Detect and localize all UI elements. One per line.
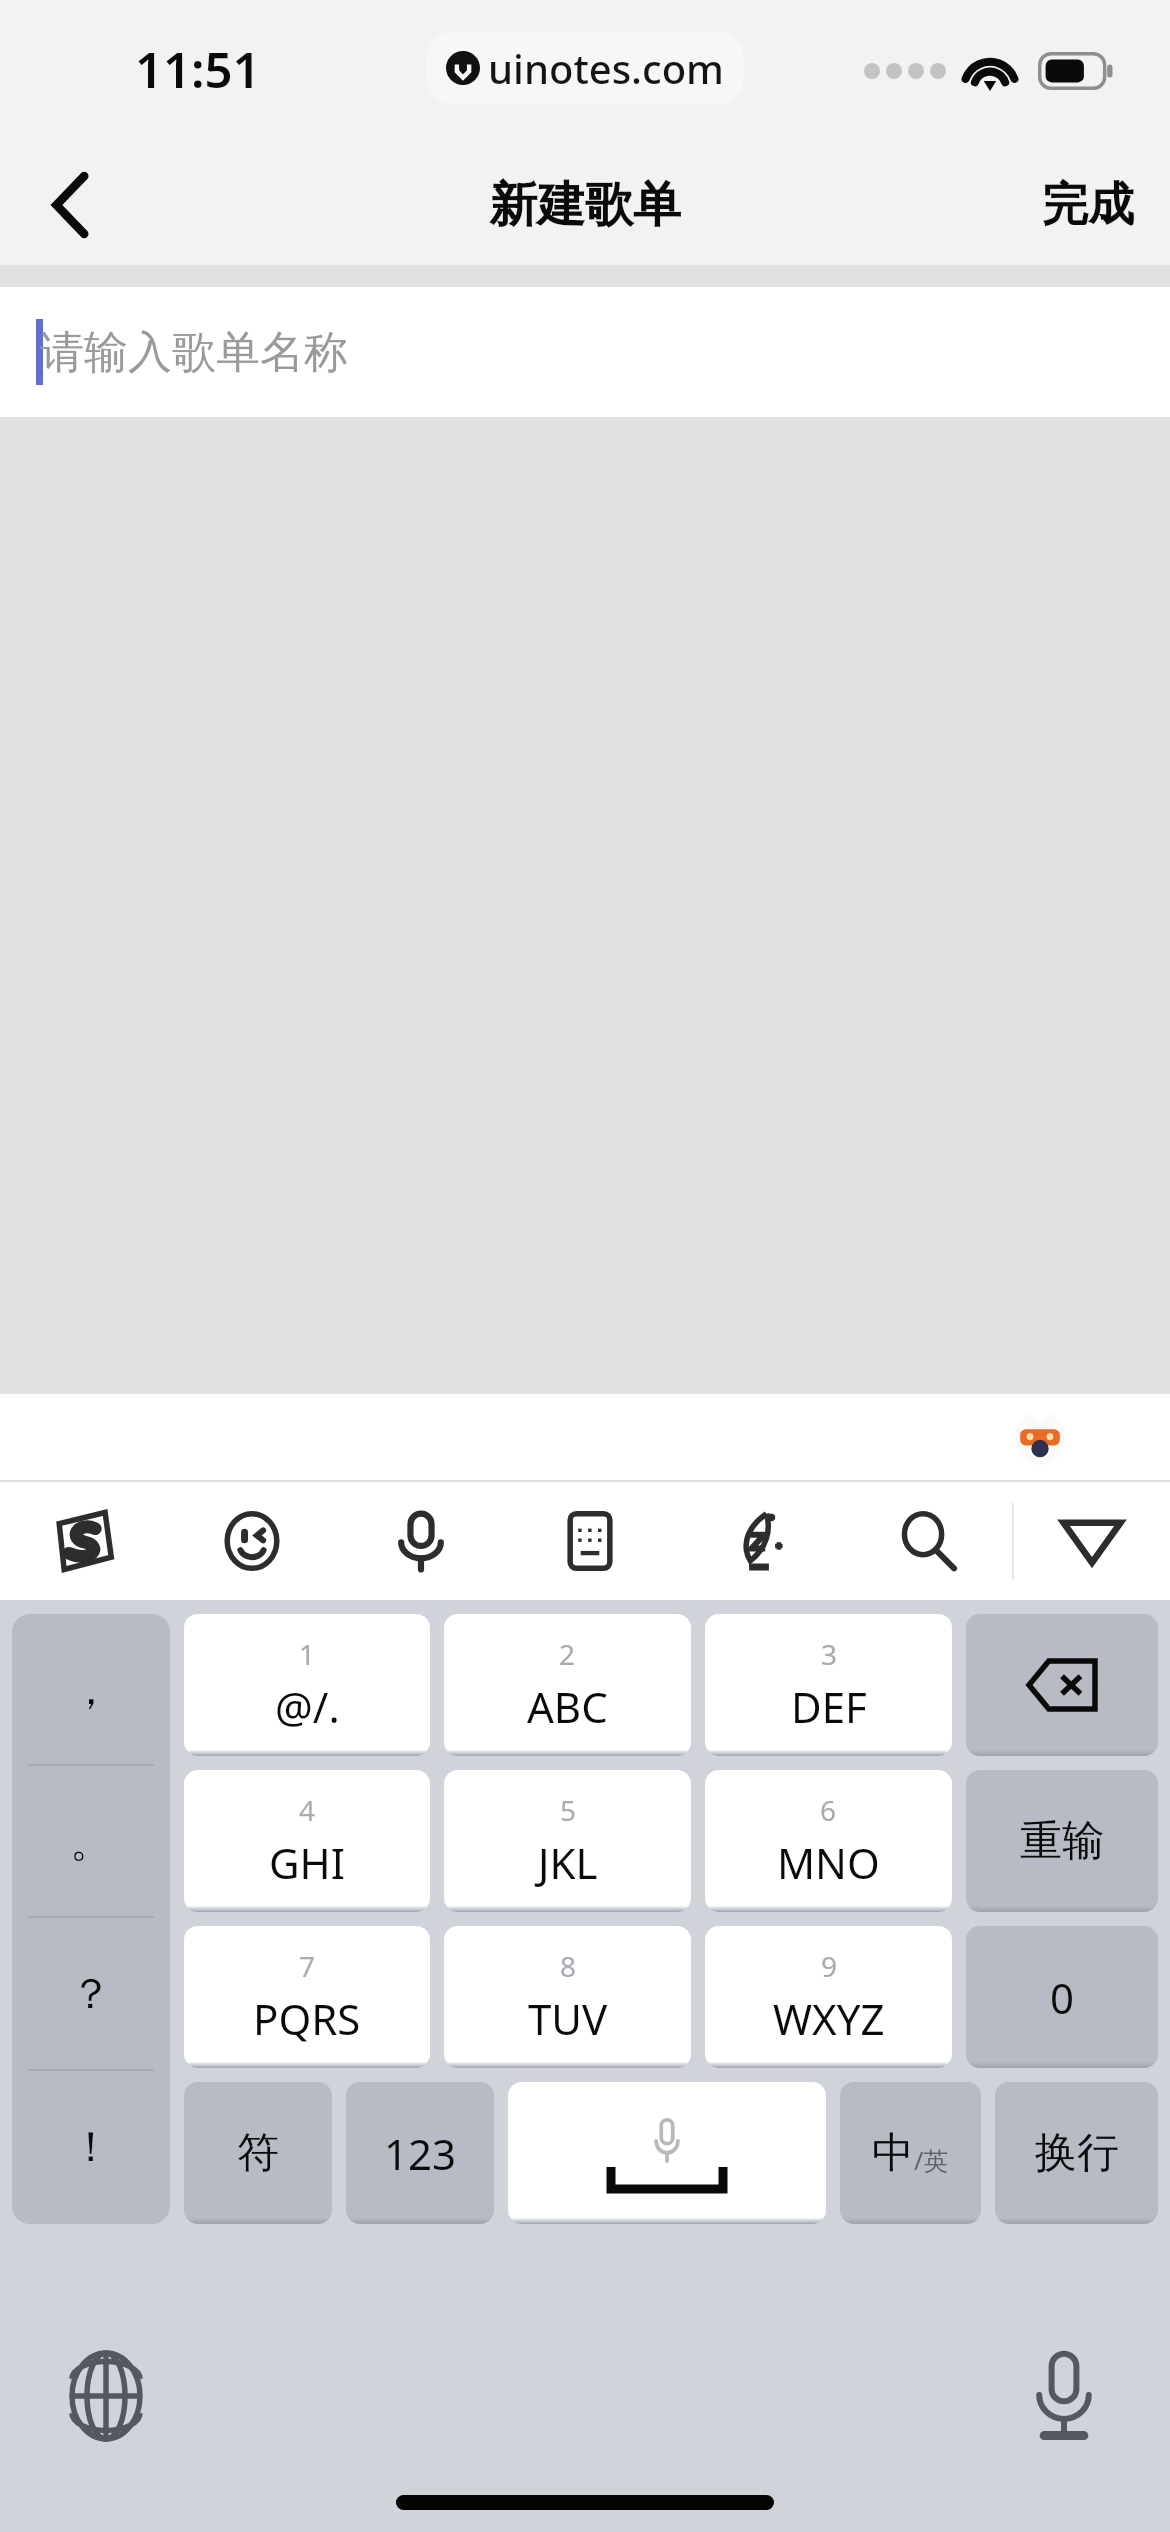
staticText: TUV [528, 1990, 608, 2047]
staticText: PQRS [253, 1990, 361, 2047]
button[interactable]: 请输入歌单名称 [0, 287, 1170, 417]
button[interactable]: Search [843, 1482, 1012, 1600]
button[interactable]: 4 [184, 1770, 430, 1912]
button[interactable]: 8 [444, 1926, 691, 2068]
button[interactable]: ！ [12, 2071, 170, 2224]
button[interactable]: 重输 [966, 1770, 1158, 1912]
staticText: 新建歌单 [489, 175, 681, 235]
button[interactable]: Voice input [336, 1482, 505, 1600]
button[interactable]: Voice input [1018, 2350, 1110, 2442]
staticText: 0 [1050, 1969, 1075, 2026]
button[interactable]: 1 [184, 1614, 430, 1756]
button[interactable]: 0 [966, 1926, 1158, 2068]
staticText: 123 [384, 2125, 457, 2182]
staticText: 11:51 [135, 36, 261, 103]
button[interactable]: Sogou [0, 1482, 168, 1600]
staticText: 重输 [1020, 1815, 1104, 1868]
button[interactable]: 5 [444, 1770, 691, 1912]
staticText: ， [70, 1664, 112, 1717]
button[interactable]: Back [20, 155, 120, 255]
button[interactable]: 7 [184, 1926, 430, 2068]
staticText: ABC [527, 1678, 608, 1735]
button[interactable]: 换行 [995, 2082, 1158, 2224]
button[interactable]: Emoji [168, 1482, 336, 1600]
button[interactable] [966, 1614, 1158, 1756]
staticText: 8 [560, 1947, 577, 1985]
button[interactable]: 完成 [1032, 162, 1144, 248]
staticText: 5 [560, 1791, 577, 1829]
staticText: WXYZ [773, 1990, 885, 2047]
staticText: /英 [914, 2143, 949, 2177]
staticText: 换行 [1035, 2127, 1119, 2180]
staticText: @/. [275, 1678, 340, 1735]
staticText: MNO [777, 1834, 880, 1891]
staticText: 。 [70, 1816, 112, 1869]
button[interactable]: 123 [346, 2082, 494, 2224]
button[interactable]: Input method mascot [1005, 1403, 1075, 1473]
button[interactable]: Keyboard layout [505, 1482, 674, 1600]
button[interactable]: Switch language [60, 2350, 152, 2442]
staticText: ！ [70, 2121, 112, 2174]
staticText: JKL [538, 1834, 598, 1891]
staticText: 4 [299, 1791, 316, 1829]
staticText: GHI [269, 1834, 345, 1891]
button[interactable]: ？ [12, 1918, 170, 2071]
button[interactable]: Space [508, 2082, 826, 2224]
staticText: 6 [820, 1791, 837, 1829]
staticText: ？ [70, 1968, 112, 2021]
staticText: 符 [237, 2127, 279, 2180]
staticText: 9 [821, 1947, 838, 1985]
button[interactable]: 中 [840, 2082, 981, 2224]
button[interactable]: 2 [444, 1614, 691, 1756]
button[interactable]: 符 [184, 2082, 332, 2224]
button[interactable]: 9 [705, 1926, 952, 2068]
button[interactable]: 3 [705, 1614, 952, 1756]
button[interactable]: Handwriting [674, 1482, 843, 1600]
staticText: 中 [872, 2127, 914, 2180]
staticText: uinotes.com [488, 41, 724, 95]
staticText: DEF [791, 1678, 867, 1735]
staticText: 完成 [1042, 176, 1134, 234]
staticText: 1 [299, 1635, 316, 1673]
button[interactable]: 。 [12, 1766, 170, 1918]
button[interactable]: Hide keyboard [1014, 1482, 1170, 1600]
staticText: 2 [559, 1635, 576, 1673]
staticText: 7 [299, 1947, 316, 1985]
staticText: 3 [821, 1635, 838, 1673]
staticText: 请输入歌单名称 [40, 325, 348, 380]
button[interactable]: 6 [705, 1770, 952, 1912]
button[interactable]: ， [12, 1614, 170, 1766]
